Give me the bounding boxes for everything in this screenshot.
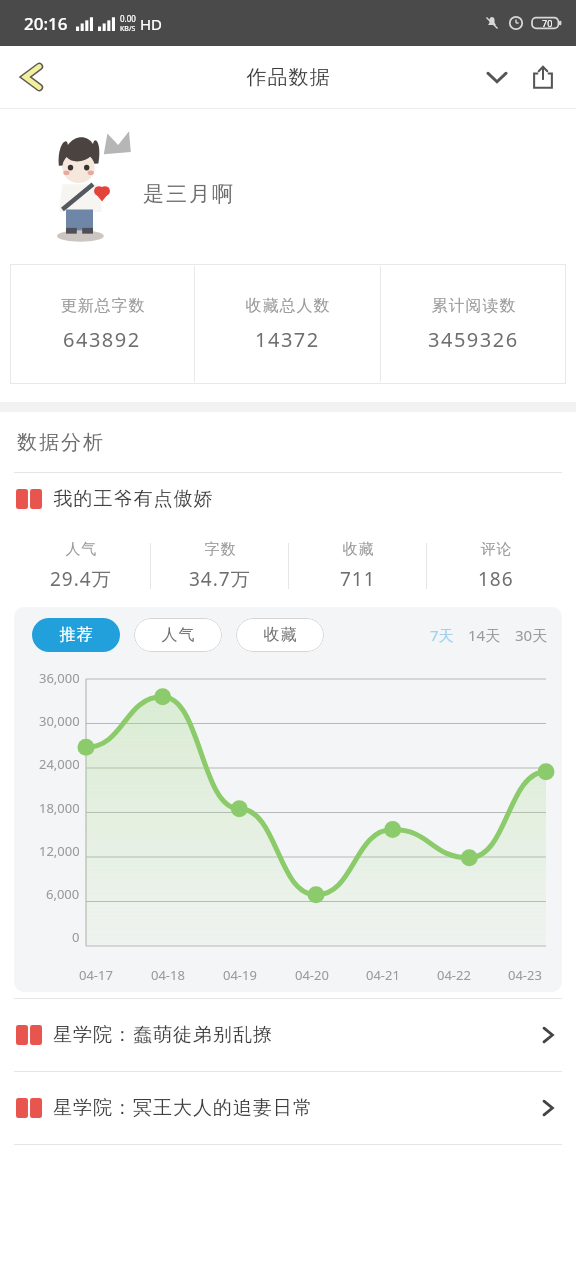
button[interactable]: 人气 <box>12 525 150 607</box>
staticText: HD <box>140 14 163 34</box>
button[interactable]: 7天 <box>430 625 454 645</box>
button[interactable]: 累计阅读数 <box>381 264 566 384</box>
staticText: 04-20 <box>295 966 329 984</box>
staticText: 星学院：蠢萌徒弟别乱撩 <box>53 1023 538 1047</box>
button[interactable]: 字数 <box>151 525 288 607</box>
staticText: 字数 <box>204 540 236 559</box>
staticText: KB/S <box>120 24 136 34</box>
button[interactable]: 人气 <box>134 618 222 652</box>
staticText: 累计阅读数 <box>431 296 516 316</box>
staticText: 收藏 <box>342 540 374 559</box>
staticText: 711 <box>340 566 376 592</box>
staticText: 24,000 <box>39 755 80 773</box>
button[interactable]: 星学院：蠢萌徒弟别乱撩 <box>16 999 558 1071</box>
staticText: 人气 <box>65 540 97 559</box>
staticText: 0.00 <box>120 13 136 24</box>
button[interactable]: 收藏 <box>289 525 426 607</box>
button[interactable]: 收藏 <box>236 618 324 652</box>
staticText: 评论 <box>480 540 512 559</box>
staticText: 6,000 <box>46 885 80 903</box>
staticText: 04-19 <box>223 966 257 984</box>
staticText: 我的王爷有点傲娇 <box>53 487 213 511</box>
staticText: 3459326 <box>428 326 519 353</box>
button[interactable]: 更新总字数 <box>10 264 194 384</box>
staticText: 04-21 <box>366 966 400 984</box>
staticText: 04-17 <box>79 966 113 984</box>
staticText: 36,000 <box>39 669 80 687</box>
button[interactable]: 14天 <box>468 625 501 645</box>
staticText: 是三月啊 <box>142 181 234 207</box>
staticText: 20:16 <box>24 12 68 35</box>
staticText: 643892 <box>63 326 141 353</box>
staticText: 70 <box>542 17 553 29</box>
button[interactable]: 我的王爷有点傲娇 <box>16 473 576 525</box>
staticText: 人气 <box>161 625 195 645</box>
staticText: 04-22 <box>437 966 471 984</box>
staticText: 04-18 <box>151 966 185 984</box>
staticText: 14372 <box>255 326 320 353</box>
staticText: 收藏总人数 <box>245 296 330 316</box>
staticText: 更新总字数 <box>60 296 145 316</box>
staticText: 12,000 <box>39 842 80 860</box>
button[interactable]: Back <box>8 53 56 101</box>
staticText: 34.7万 <box>189 566 251 592</box>
button[interactable]: 收藏总人数 <box>195 264 380 384</box>
staticText: 推荐 <box>59 625 93 645</box>
staticText: 04-23 <box>508 966 542 984</box>
button[interactable]: Share <box>520 54 566 100</box>
button[interactable]: 推荐 <box>32 618 120 652</box>
button[interactable]: 星学院：冥王大人的追妻日常 <box>16 1072 558 1144</box>
staticText: 数据分析 <box>16 430 104 455</box>
staticText: 18,000 <box>39 799 80 817</box>
staticText: 186 <box>478 566 514 592</box>
button[interactable]: Expand <box>474 54 520 100</box>
staticText: 收藏 <box>263 625 297 645</box>
staticText: 0 <box>72 928 80 946</box>
staticText: 30,000 <box>39 712 80 730</box>
staticText: 作品数据 <box>246 65 330 90</box>
button[interactable]: 30天 <box>515 625 548 645</box>
button[interactable]: 评论 <box>427 525 564 607</box>
staticText: 星学院：冥王大人的追妻日常 <box>53 1096 538 1120</box>
staticText: 29.4万 <box>50 566 112 592</box>
